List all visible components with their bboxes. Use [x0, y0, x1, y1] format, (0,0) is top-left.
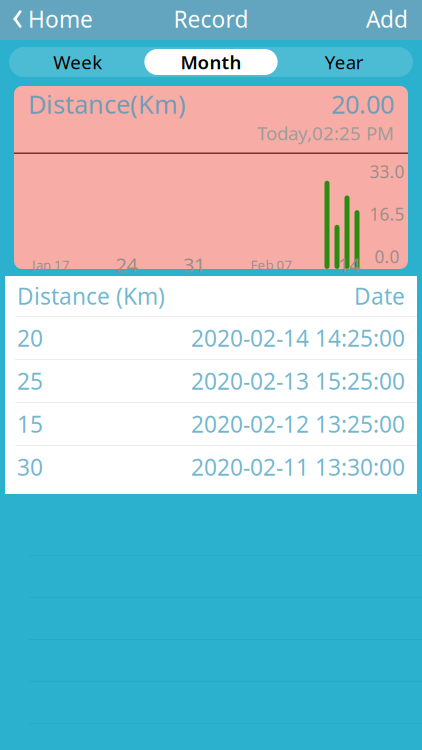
staticText: 20: [17, 323, 43, 353]
button[interactable]: Year: [278, 49, 411, 75]
button[interactable]: 30: [5, 445, 417, 488]
staticText: 2020-02-12 13:25:00: [191, 409, 405, 439]
button[interactable]: 20: [5, 316, 417, 359]
staticText: Feb 07: [250, 256, 292, 273]
staticText: Distance(Km): [28, 87, 186, 121]
staticText: Record: [173, 4, 248, 34]
staticText: Month: [180, 50, 241, 74]
staticText: 2020-02-14 14:25:00: [191, 323, 405, 353]
staticText: Distance (Km): [17, 281, 165, 311]
staticText: Year: [325, 50, 364, 74]
staticText: 2020-02-11 13:30:00: [191, 452, 405, 482]
staticText: 16.5: [369, 202, 404, 225]
staticText: 31: [183, 251, 205, 278]
staticText: 20.00: [331, 87, 394, 121]
button[interactable]: Add: [352, 0, 422, 40]
button[interactable]: Week: [11, 49, 144, 75]
staticText: Week: [53, 50, 102, 74]
button[interactable]: Home: [0, 0, 101, 40]
button[interactable]: 25: [5, 359, 417, 402]
staticText: 15: [17, 409, 43, 439]
staticText: 25: [17, 366, 43, 396]
staticText: Today,02:25 PM: [257, 121, 394, 145]
staticText: 30: [17, 452, 43, 482]
staticText: 14: [338, 251, 360, 278]
button[interactable]: 15: [5, 402, 417, 445]
button[interactable]: Month: [144, 49, 278, 75]
staticText: 0.0: [374, 245, 399, 268]
staticText: 33.0: [369, 160, 404, 183]
staticText: 24: [115, 251, 137, 278]
staticText: Date: [354, 281, 405, 311]
staticText: Home: [28, 4, 93, 34]
staticText: 2020-02-13 15:25:00: [191, 366, 405, 396]
staticText: Jan 17: [32, 256, 70, 273]
staticText: Add: [366, 4, 408, 34]
